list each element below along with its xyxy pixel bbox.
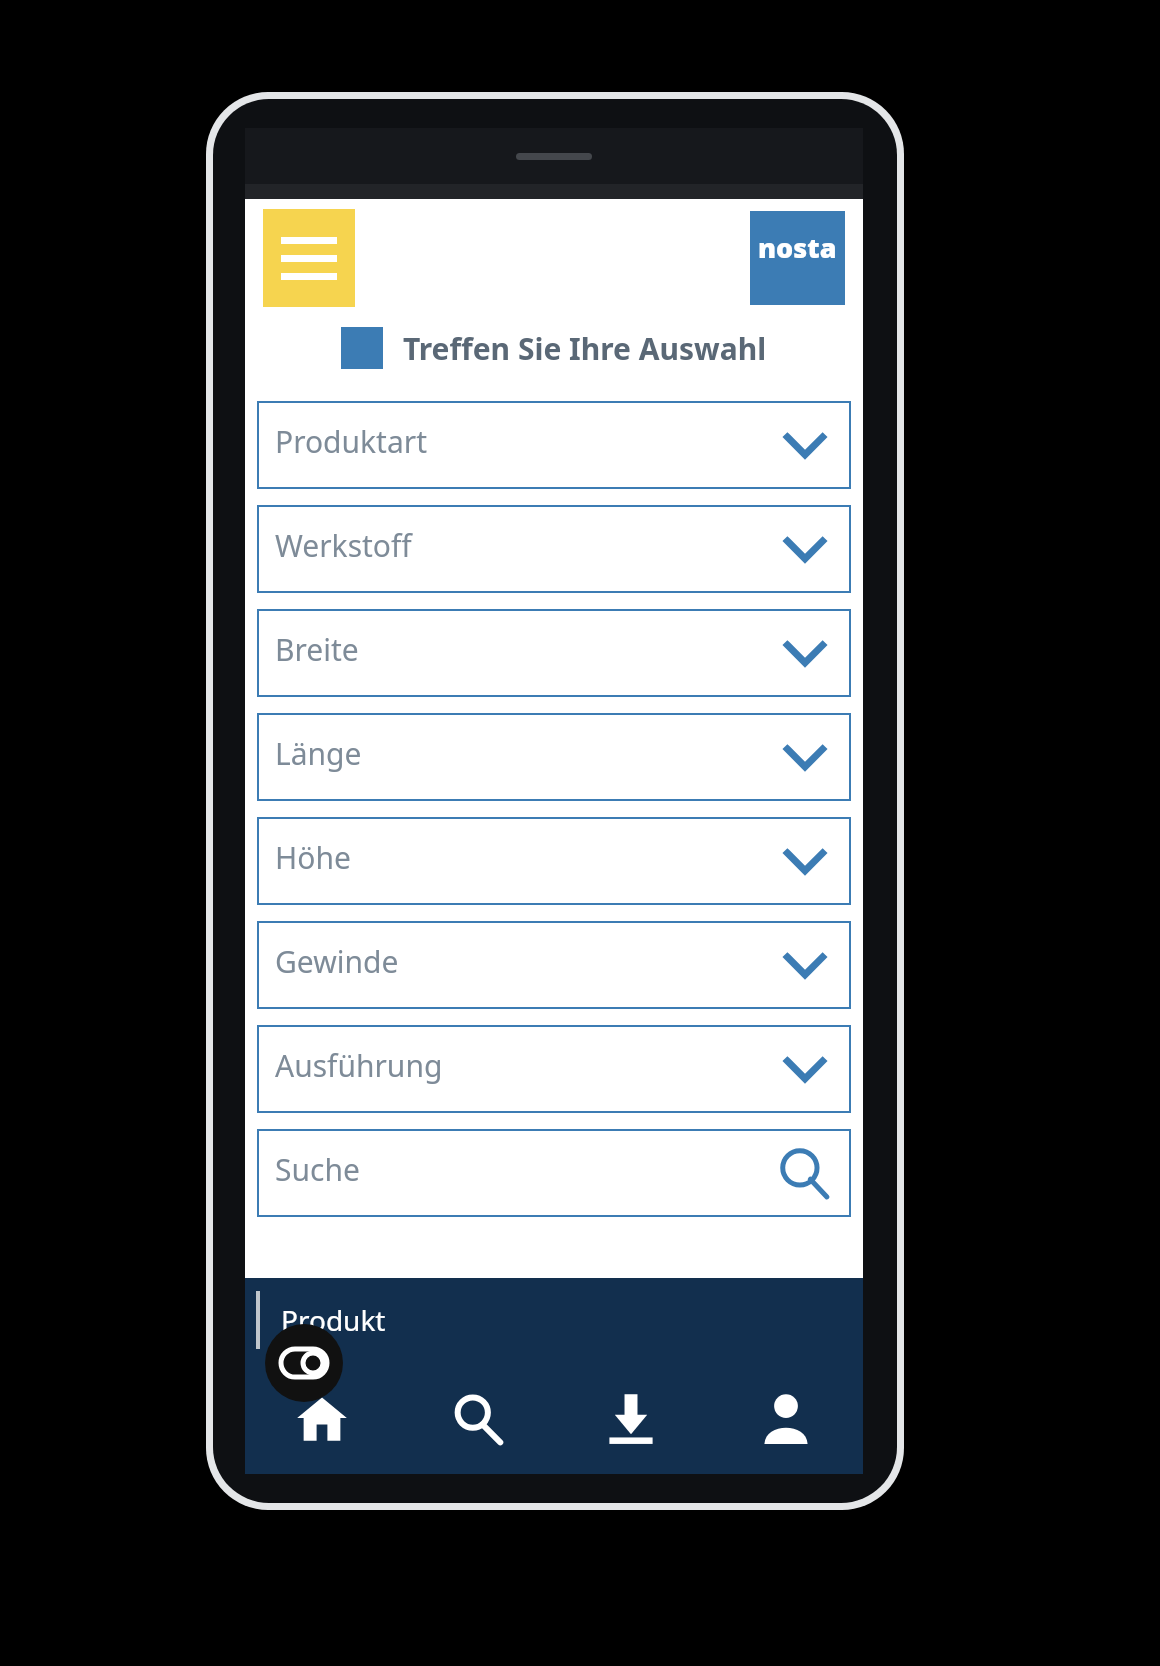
button[interactable]: nosta logo [750, 211, 845, 305]
staticText: Suche [275, 1149, 360, 1190]
button[interactable]: Home [245, 1362, 399, 1474]
button[interactable]: Search [399, 1362, 553, 1474]
button[interactable]: Open menu [263, 209, 355, 307]
button[interactable]: Werkstoff [257, 505, 851, 593]
other: Search [777, 1147, 829, 1199]
button[interactable]: Produktart [257, 401, 851, 489]
staticText: nosta [758, 229, 837, 266]
button[interactable]: Profile [708, 1362, 863, 1474]
staticText: Ausführung [275, 1045, 443, 1086]
button[interactable]: Gewinde [257, 921, 851, 1009]
staticText: Gewinde [275, 941, 399, 982]
button[interactable]: Höhe [257, 817, 851, 905]
button[interactable]: Suche [257, 1129, 851, 1217]
button[interactable]: Breite [257, 609, 851, 697]
staticText: Werkstoff [275, 525, 412, 566]
button[interactable]: Downloads [553, 1362, 708, 1474]
staticText: Produktart [275, 421, 427, 462]
button[interactable]: Ausführung [257, 1025, 851, 1113]
button[interactable]: Länge [257, 713, 851, 801]
staticText: Höhe [275, 837, 351, 878]
staticText: Länge [275, 733, 362, 774]
staticText: Treffen Sie Ihre Auswahl [403, 328, 767, 369]
staticText: Produkt [281, 1301, 386, 1339]
button[interactable]: Accessibility toggle [265, 1324, 343, 1402]
staticText: Breite [275, 629, 359, 670]
